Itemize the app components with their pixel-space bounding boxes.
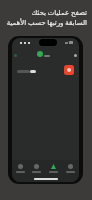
button[interactable]: Account xyxy=(74,54,77,57)
button[interactable]: Home xyxy=(12,164,28,173)
button[interactable]: Profile xyxy=(62,164,79,173)
staticText: تصفح عمليات بحثك xyxy=(31,8,87,18)
button[interactable]: Profile xyxy=(37,51,43,57)
button[interactable]: Library xyxy=(45,164,62,173)
button[interactable]: Record xyxy=(64,65,74,75)
staticText: السابقة ورتبها حسب الأهمية xyxy=(6,18,87,28)
button[interactable]: Explore xyxy=(28,164,45,173)
